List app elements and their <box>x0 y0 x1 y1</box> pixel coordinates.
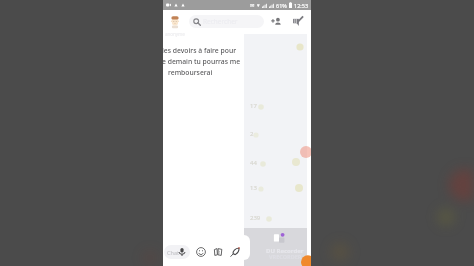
staticText: 44 <box>250 159 257 167</box>
button[interactable]: Voice note <box>177 247 187 257</box>
staticText: e demain tu pourras me <box>162 57 241 66</box>
button[interactable] <box>168 14 182 28</box>
staticText: les devoirs à faire pour <box>162 46 237 55</box>
button[interactable]: Add friend <box>270 15 282 27</box>
staticText: Chat <box>167 249 179 256</box>
button[interactable]: New chat <box>291 15 303 27</box>
staticText: 17 <box>250 102 257 110</box>
staticText: ✉ <box>250 2 255 8</box>
button[interactable]: Chat <box>164 245 190 259</box>
staticText: rembourserai <box>168 68 213 77</box>
staticText: 239 <box>250 214 261 222</box>
staticText: 61% <box>276 2 287 9</box>
button[interactable]: Send snap <box>230 247 240 257</box>
button[interactable]: Rechercher <box>189 15 264 28</box>
staticText: anonyme <box>165 31 185 37</box>
staticText: ▾ <box>257 2 260 8</box>
button[interactable]: Emoji <box>196 247 206 257</box>
staticText: 12:53 <box>294 2 309 9</box>
staticText: DU Recorder <box>266 247 304 255</box>
staticText: VRECORDER <box>269 253 302 260</box>
staticText: 2 <box>250 130 254 138</box>
button[interactable]: Stickers <box>213 247 223 257</box>
staticText: 13 <box>250 184 257 192</box>
